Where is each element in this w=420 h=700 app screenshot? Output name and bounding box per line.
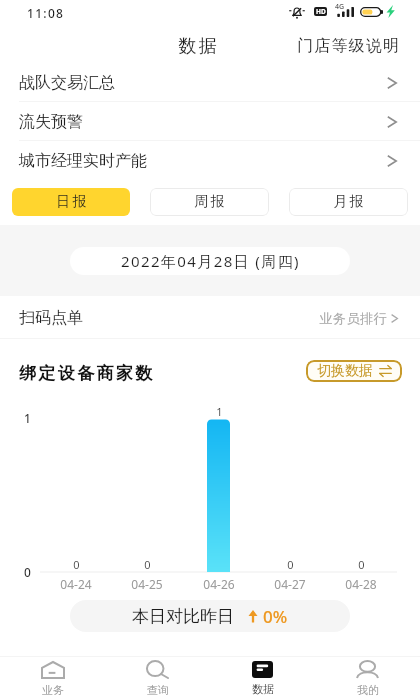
staticText: 04-24 xyxy=(60,576,92,592)
button[interactable]: 日报 xyxy=(12,188,130,216)
staticText: 2022年04月28日 (周四) xyxy=(121,251,300,271)
staticText: 业务员排行 xyxy=(319,310,387,326)
staticText: 周报 xyxy=(193,193,226,211)
button[interactable]: 数据 xyxy=(210,656,315,700)
staticText: 04-28 xyxy=(345,576,377,592)
staticText: 0% xyxy=(263,605,288,628)
staticText: 门店等级说明 xyxy=(297,36,401,56)
staticText: 04-27 xyxy=(274,576,306,592)
button[interactable]: 城市经理实时产能 xyxy=(0,141,420,180)
staticText: 扫码点单 xyxy=(19,308,83,328)
staticText: 日报 xyxy=(55,193,88,211)
staticText: 0 xyxy=(358,557,365,572)
other: 业务 xyxy=(41,661,65,679)
staticText: 1 xyxy=(216,404,223,419)
button[interactable]: 切换数据 xyxy=(306,360,402,382)
button[interactable]: 周报 xyxy=(150,188,269,216)
staticText: 我的 xyxy=(357,683,379,697)
staticText: 0 xyxy=(73,557,80,572)
other: 我的 xyxy=(356,661,379,679)
other: 数据 xyxy=(252,661,273,678)
staticText: 0 xyxy=(24,564,31,580)
button[interactable]: 战队交易汇总 xyxy=(0,63,420,102)
staticText: 数据 xyxy=(177,35,218,58)
staticText: 1 xyxy=(24,410,31,426)
other: 查询 xyxy=(146,661,169,679)
button[interactable]: 业务员排行 xyxy=(319,310,398,326)
staticText: 数据 xyxy=(252,682,274,696)
button[interactable]: 2022年04月28日 (周四) xyxy=(70,247,350,275)
staticText: HD xyxy=(316,7,326,16)
staticText: 切换数据 xyxy=(317,362,373,380)
button[interactable]: 月报 xyxy=(289,188,408,216)
staticText: 业务 xyxy=(42,683,64,697)
button[interactable]: 我的 xyxy=(315,656,420,700)
staticText: 04-26 xyxy=(203,576,235,592)
staticText: 4G xyxy=(335,2,345,12)
staticText: 绑定设备商家数 xyxy=(19,363,155,384)
staticText: 战队交易汇总 xyxy=(19,73,115,93)
staticText: 04-25 xyxy=(131,576,163,592)
button[interactable]: 流失预警 xyxy=(0,102,420,141)
button[interactable]: 查询 xyxy=(105,656,210,700)
staticText: 0 xyxy=(287,557,294,572)
staticText: 流失预警 xyxy=(19,112,83,132)
staticText: 查询 xyxy=(147,683,169,697)
button[interactable]: 门店等级说明 xyxy=(297,36,401,56)
button[interactable]: 本日对比昨日 xyxy=(70,600,350,632)
staticText: 月报 xyxy=(332,193,365,211)
staticText: 城市经理实时产能 xyxy=(19,151,147,171)
staticText: 0 xyxy=(144,557,151,572)
button[interactable]: 业务 xyxy=(0,656,105,700)
staticText: 本日对比昨日 xyxy=(132,606,234,627)
staticText: 11:08 xyxy=(27,5,65,21)
